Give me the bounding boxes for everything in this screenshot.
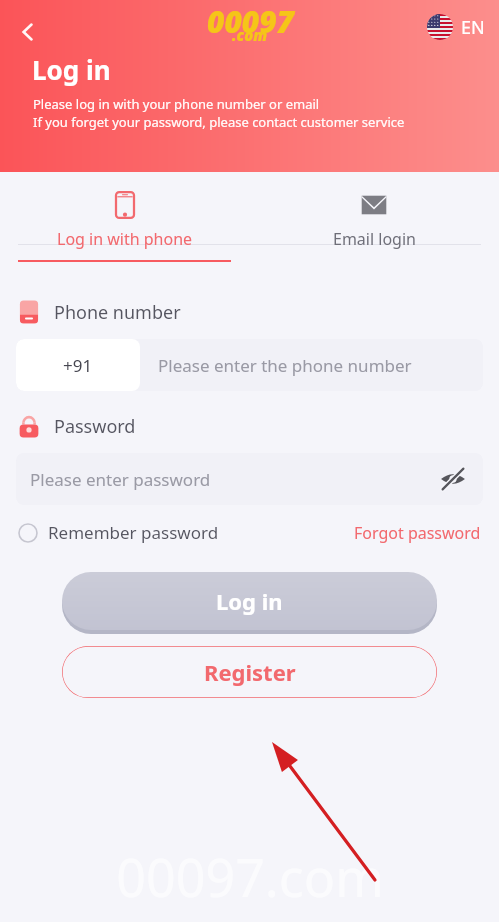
staticText: Phone number	[54, 300, 181, 325]
staticText: 00097	[207, 1, 294, 42]
button[interactable]: Register	[62, 646, 437, 698]
button[interactable]: Email login	[249, 172, 499, 260]
button[interactable]: Back	[4, 8, 52, 56]
staticText: Please enter the phone number	[158, 354, 412, 377]
button[interactable]: Please enter password	[16, 453, 483, 505]
button[interactable]: Log in	[62, 572, 437, 630]
button[interactable]: EN	[423, 10, 489, 44]
staticText: +91	[63, 354, 93, 377]
staticText: 00097.com	[116, 841, 384, 912]
staticText: Log in	[216, 586, 283, 616]
staticText: Email login	[333, 228, 416, 250]
button[interactable]: Log in with phone	[0, 172, 249, 262]
button[interactable]: Show password	[433, 459, 473, 499]
staticText: Please log in with your phone number or …	[33, 95, 320, 113]
staticText: Register	[204, 657, 296, 687]
button[interactable]: Forgot password	[354, 522, 481, 544]
staticText: .com	[232, 25, 268, 45]
staticText: EN	[461, 15, 485, 40]
button[interactable]: Remember password	[18, 521, 219, 544]
button[interactable]: +91	[16, 339, 140, 391]
staticText: If you forget your password, please cont…	[33, 113, 405, 131]
staticText: Remember password	[48, 521, 219, 544]
staticText: Log in with phone	[57, 228, 193, 250]
staticText: Please enter password	[30, 468, 211, 491]
staticText: Password	[54, 414, 136, 439]
staticText: Log in	[32, 52, 111, 87]
